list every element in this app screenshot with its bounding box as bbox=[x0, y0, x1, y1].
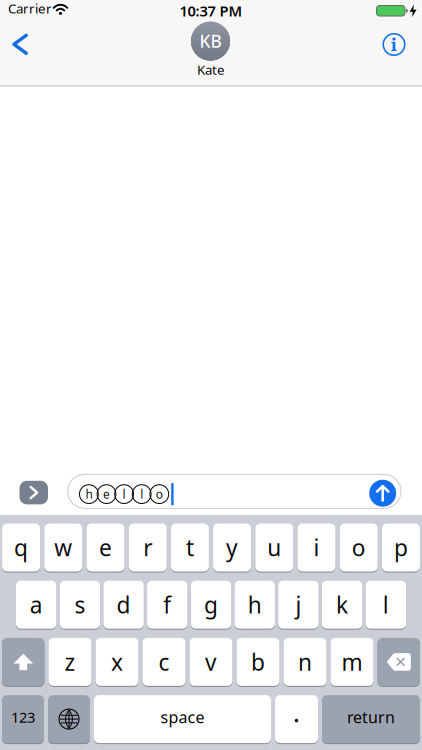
button[interactable]: x bbox=[95, 638, 138, 686]
staticText: space bbox=[160, 706, 204, 728]
staticText: d bbox=[117, 590, 131, 620]
button[interactable]: Delete bbox=[377, 638, 420, 686]
staticText: 123 bbox=[11, 707, 35, 727]
button[interactable]: u bbox=[255, 523, 293, 571]
button[interactable]: Shift bbox=[2, 638, 44, 686]
button[interactable]: Period bbox=[275, 695, 318, 743]
button[interactable]: r bbox=[129, 523, 167, 571]
staticText: KB bbox=[199, 29, 221, 52]
button[interactable]: space bbox=[94, 695, 271, 743]
staticText: Kate bbox=[197, 61, 225, 78]
staticText: l bbox=[123, 486, 126, 502]
button[interactable]: c bbox=[142, 638, 185, 686]
staticText: i bbox=[313, 532, 319, 562]
button[interactable]: z bbox=[48, 638, 91, 686]
staticText: Carrier bbox=[8, 0, 52, 17]
button[interactable]: h bbox=[234, 581, 275, 629]
button[interactable]: n bbox=[283, 638, 326, 686]
button[interactable]: b bbox=[236, 638, 279, 686]
staticText: w bbox=[54, 532, 72, 562]
staticText: h bbox=[85, 486, 92, 502]
staticText: r bbox=[143, 532, 152, 562]
staticText: h bbox=[248, 590, 262, 620]
button[interactable]: i bbox=[297, 523, 335, 571]
staticText: a bbox=[30, 590, 43, 620]
button[interactable]: e bbox=[86, 523, 124, 571]
button[interactable]: o bbox=[340, 523, 378, 571]
button[interactable]: s bbox=[60, 581, 100, 629]
button[interactable]: j bbox=[278, 581, 319, 629]
button[interactable]: f bbox=[147, 581, 188, 629]
staticText: 10:37 PM bbox=[179, 1, 242, 20]
staticText: c bbox=[158, 647, 169, 677]
staticText: p bbox=[394, 532, 408, 562]
staticText: l bbox=[383, 590, 389, 620]
button[interactable]: a bbox=[16, 581, 56, 629]
staticText: e bbox=[99, 532, 112, 562]
staticText: y bbox=[226, 532, 238, 562]
button[interactable]: Send bbox=[369, 480, 396, 507]
staticText: t bbox=[186, 532, 194, 562]
button[interactable]: t bbox=[171, 523, 209, 571]
staticText: n bbox=[298, 647, 312, 677]
button[interactable]: l bbox=[365, 581, 406, 629]
staticText: l bbox=[140, 486, 143, 502]
staticText: z bbox=[64, 647, 75, 677]
staticText: q bbox=[14, 532, 28, 562]
staticText: s bbox=[74, 590, 85, 620]
staticText: j bbox=[295, 590, 301, 620]
button[interactable]: k bbox=[322, 581, 362, 629]
button[interactable]: v bbox=[189, 638, 232, 686]
staticText: m bbox=[341, 647, 362, 677]
button[interactable]: m bbox=[330, 638, 373, 686]
button[interactable]: Message bbox=[68, 474, 401, 508]
button[interactable]: iMessage apps bbox=[19, 481, 48, 504]
button[interactable]: p bbox=[382, 523, 420, 571]
button[interactable]: y bbox=[213, 523, 251, 571]
button[interactable]: 123 bbox=[2, 695, 44, 743]
staticText: f bbox=[163, 590, 171, 620]
button[interactable]: return bbox=[322, 695, 420, 743]
button[interactable]: Kate profile bbox=[191, 21, 230, 60]
staticText: return bbox=[347, 706, 395, 728]
button[interactable]: w bbox=[44, 523, 82, 571]
staticText: b bbox=[251, 647, 265, 677]
button[interactable]: Details bbox=[376, 26, 412, 62]
button[interactable]: g bbox=[191, 581, 231, 629]
staticText: v bbox=[205, 647, 217, 677]
button[interactable]: Back bbox=[0, 24, 40, 64]
staticText: o bbox=[352, 532, 366, 562]
staticText: u bbox=[267, 532, 281, 562]
staticText: g bbox=[204, 590, 218, 620]
button[interactable]: q bbox=[2, 523, 40, 571]
button[interactable]: Next keyboard bbox=[48, 695, 90, 743]
staticText: e bbox=[103, 486, 110, 502]
staticText: o bbox=[156, 486, 163, 502]
staticText: x bbox=[111, 647, 123, 677]
button[interactable]: d bbox=[103, 581, 144, 629]
staticText: k bbox=[336, 590, 348, 620]
